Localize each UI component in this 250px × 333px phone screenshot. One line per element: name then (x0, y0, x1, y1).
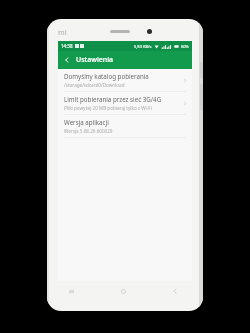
staticText: Limit pobierania przez sieć 3G/4G (64, 95, 162, 103)
staticText: Wersja 5.08.26.600029 (64, 128, 113, 134)
staticText: mi (58, 28, 67, 38)
staticText: Domyślny katalog pobierania (64, 72, 149, 80)
staticText: Pliki powyżej 20 MB pobieraj tylko z Wi-… (64, 105, 152, 111)
button[interactable]: Back (61, 54, 73, 66)
staticText: /storage/sdcard0/Download (64, 82, 125, 88)
button[interactable]: Wersja aplikacji (58, 115, 192, 137)
button[interactable]: Recent apps (64, 284, 78, 298)
staticText: 14:38 (61, 43, 73, 49)
button[interactable]: Home (116, 284, 130, 298)
staticText: 60% (181, 44, 189, 49)
staticText: Wersja aplikacji (64, 118, 109, 126)
button[interactable]: Domyślny katalog pobierania (58, 69, 192, 91)
staticText: Ustawienia (76, 55, 114, 65)
button[interactable]: Back (168, 284, 182, 298)
button[interactable]: Limit pobierania przez sieć 3G/4G (58, 92, 192, 114)
staticText: 5,83 KB/s (134, 44, 152, 49)
